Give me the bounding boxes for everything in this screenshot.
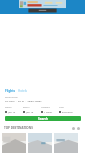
staticText: Jun 12 [8, 110, 16, 113]
button[interactable]: Hotels [18, 89, 28, 93]
button[interactable]: Class [59, 106, 81, 113]
staticText: Flights [5, 89, 16, 93]
staticText: Depart [5, 106, 12, 109]
button[interactable]: Travellers [41, 106, 59, 113]
button[interactable] [54, 133, 78, 153]
staticText: Round-trip [5, 95, 18, 98]
button[interactable]: Depart [5, 106, 23, 113]
staticText: Fly from · Fly to · Select dates [5, 99, 42, 102]
staticText: 1 adult [44, 110, 53, 113]
staticText: Hotels [18, 89, 28, 93]
button[interactable]: Search [5, 116, 81, 121]
staticText: Travellers [41, 106, 51, 109]
staticText: TOP DESTINATIONS [4, 126, 33, 130]
staticText: Economy [62, 110, 73, 113]
button[interactable] [28, 133, 52, 153]
staticText: Search [38, 117, 49, 121]
button[interactable]: Return [23, 106, 41, 113]
button[interactable]: Flights [5, 89, 16, 93]
staticText: Return [23, 106, 30, 109]
button[interactable] [2, 133, 26, 153]
staticText: Class [59, 106, 64, 109]
button[interactable]: Next [77, 127, 80, 130]
staticText: Jun 19 [26, 110, 34, 113]
button[interactable]: Previous [72, 127, 75, 130]
